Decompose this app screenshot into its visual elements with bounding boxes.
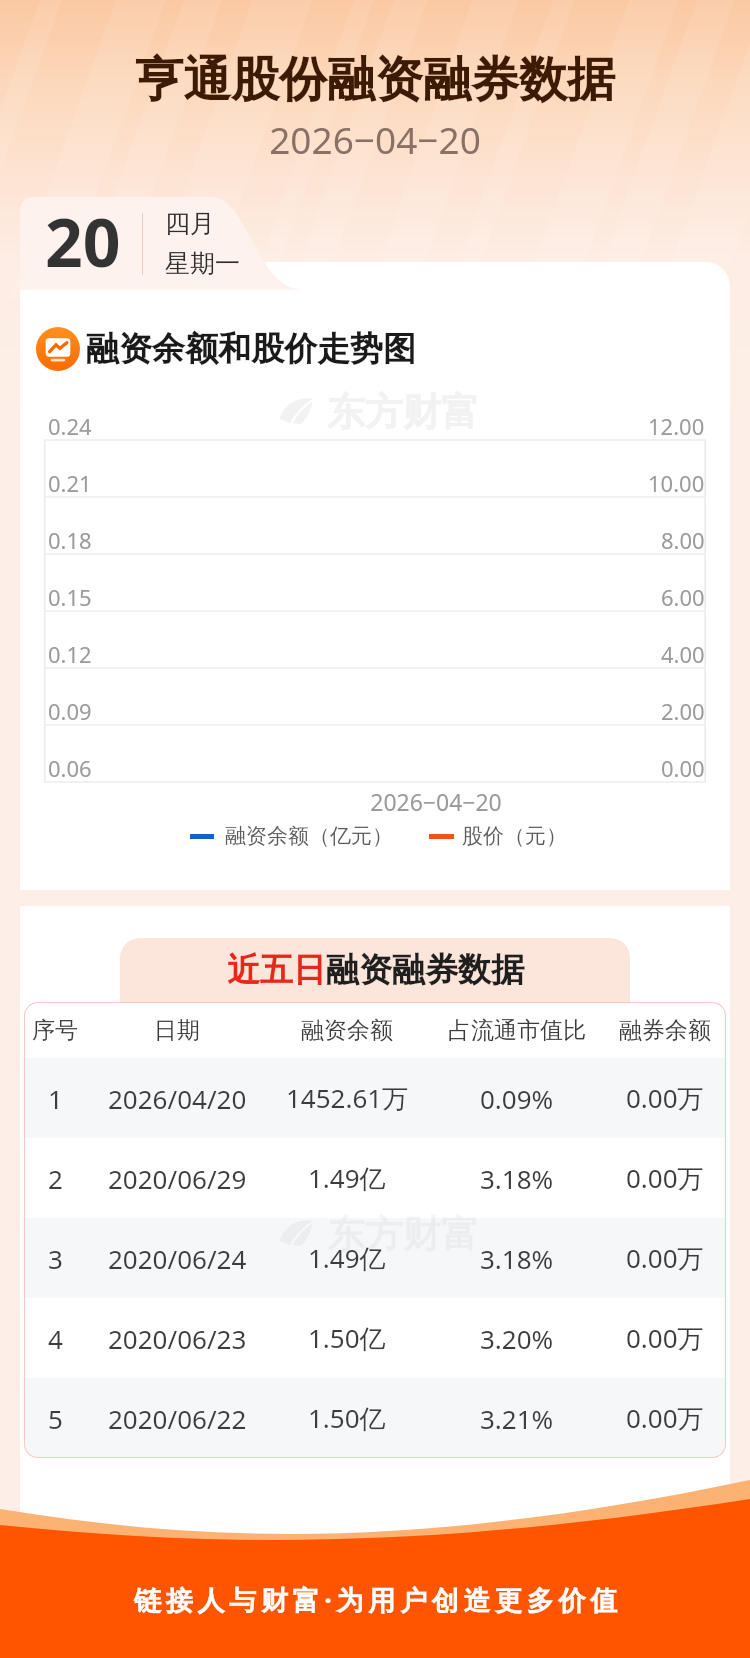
staticText: 1 <box>48 1081 63 1116</box>
staticText: 8.00 <box>661 525 705 555</box>
staticText: 1.50亿 <box>308 1320 386 1356</box>
staticText: 3.20% <box>480 1321 554 1356</box>
staticText: 东方财富 <box>327 388 479 432</box>
staticText: 占流通市值比 <box>448 1016 586 1045</box>
staticText: 链接人与财富·为用户创造更多价值 <box>3 1581 750 1618</box>
staticText: 四月 <box>165 208 215 239</box>
staticText: 融资余额 <box>301 1016 393 1045</box>
staticText: 2 <box>48 1161 63 1196</box>
button[interactable]: 3 <box>24 1218 726 1298</box>
staticText: 0.24 <box>48 411 92 441</box>
staticText: 近五日融资融券数据 <box>227 949 524 991</box>
staticText: 0.00万 <box>626 1160 704 1196</box>
staticText: 0.18 <box>48 525 92 555</box>
staticText: 1.49亿 <box>308 1160 386 1196</box>
button[interactable]: 5 <box>24 1378 726 1458</box>
staticText: 亨通股份融资融券数据 <box>0 50 750 110</box>
staticText: 4.00 <box>661 639 705 669</box>
staticText: 2026/04/20 <box>108 1081 247 1116</box>
staticText: 0.00万 <box>626 1240 704 1276</box>
button[interactable]: 2 <box>24 1138 726 1218</box>
staticText: 1452.61万 <box>286 1080 409 1116</box>
staticText: 日期 <box>154 1016 200 1045</box>
staticText: 0.06 <box>48 753 92 783</box>
staticText: 3.18% <box>480 1241 554 1276</box>
staticText: 12.00 <box>648 411 705 441</box>
staticText: 0.09 <box>48 696 92 726</box>
staticText: 东方财富 <box>327 1210 479 1254</box>
staticText: 2.00 <box>661 696 705 726</box>
staticText: 0.09% <box>480 1081 554 1116</box>
staticText: 3.21% <box>480 1401 554 1436</box>
staticText: 3.18% <box>480 1161 554 1196</box>
staticText: 10.00 <box>648 468 705 498</box>
staticText: 股价（元） <box>462 823 567 849</box>
button[interactable]: 4 <box>24 1298 726 1378</box>
staticText: 6.00 <box>661 582 705 612</box>
staticText: 2020/06/22 <box>108 1401 247 1436</box>
staticText: 0.21 <box>48 468 92 498</box>
staticText: 1.50亿 <box>308 1400 386 1436</box>
staticText: 3 <box>48 1241 63 1276</box>
staticText: 融资余额（亿元） <box>225 823 393 849</box>
staticText: 20 <box>45 196 121 286</box>
button[interactable]: 1 <box>24 1058 726 1138</box>
staticText: 5 <box>48 1401 63 1436</box>
staticText: 2020/06/29 <box>108 1161 247 1196</box>
staticText: 4 <box>48 1321 63 1356</box>
staticText: 2020/06/23 <box>108 1321 247 1356</box>
staticText: 序号 <box>32 1016 78 1045</box>
staticText: 2026−04−20 <box>0 114 750 164</box>
staticText: 0.00万 <box>626 1320 704 1356</box>
staticText: 融券余额 <box>619 1016 711 1045</box>
staticText: 0.00 <box>661 753 705 783</box>
staticText: 0.12 <box>48 639 92 669</box>
staticText: 0.00万 <box>626 1400 704 1436</box>
staticText: 1.49亿 <box>308 1240 386 1276</box>
staticText: 星期一 <box>165 248 240 279</box>
staticText: 融资余额和股价走势图 <box>86 328 416 370</box>
staticText: 0.00万 <box>626 1080 704 1116</box>
staticText: 2020/06/24 <box>108 1241 247 1276</box>
staticText: 2026−04−20 <box>370 786 502 817</box>
staticText: 0.15 <box>48 582 92 612</box>
